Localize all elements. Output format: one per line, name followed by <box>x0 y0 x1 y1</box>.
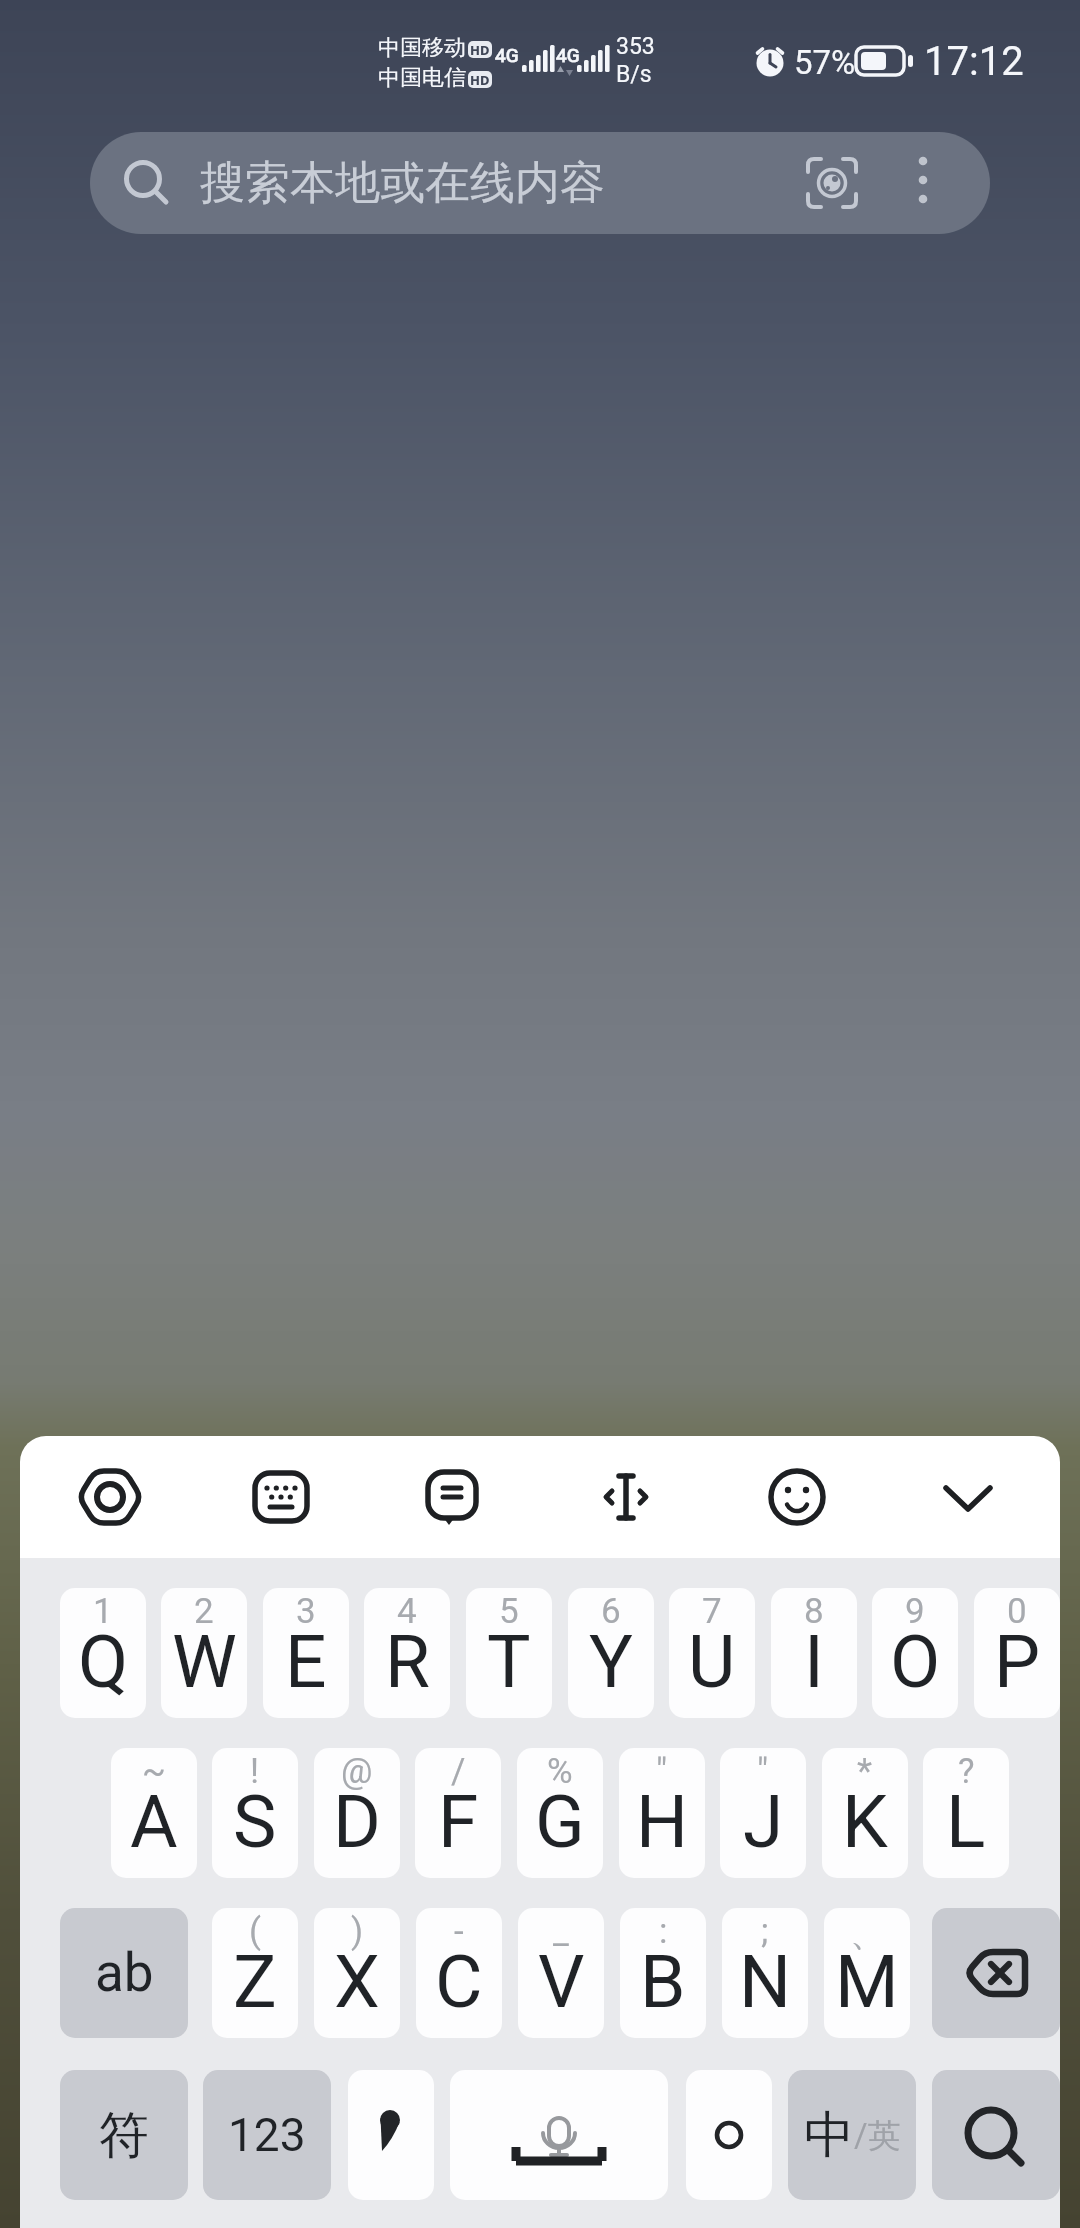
button[interactable] <box>348 2070 434 2200</box>
button[interactable]: ; <box>722 1908 808 2038</box>
staticText: W <box>172 1619 237 1705</box>
button[interactable]: ! <box>212 1748 298 1878</box>
staticText: /英 <box>854 2115 901 2157</box>
button[interactable] <box>932 1462 1004 1534</box>
staticText: 中国电信 <box>378 64 466 92</box>
staticText: HD <box>470 41 490 58</box>
staticText: 2 <box>194 1591 214 1632</box>
button[interactable]: _ <box>518 1908 604 2038</box>
button[interactable]: % <box>517 1748 603 1878</box>
button[interactable] <box>932 2070 1060 2200</box>
staticText: 6 <box>601 1591 621 1632</box>
staticText: 8 <box>804 1591 824 1632</box>
staticText: / <box>451 1751 466 1792</box>
button[interactable]: " <box>619 1748 705 1878</box>
staticText: ) <box>351 1911 364 1952</box>
staticText: 9 <box>905 1591 925 1632</box>
button[interactable]: 9 <box>872 1588 958 1718</box>
staticText: O <box>890 1619 941 1705</box>
button[interactable] <box>416 1461 488 1533</box>
button[interactable]: 4 <box>364 1588 450 1718</box>
button[interactable] <box>761 1461 833 1533</box>
button[interactable]: " <box>720 1748 806 1878</box>
staticText: T <box>487 1619 531 1705</box>
staticText: V <box>538 1939 585 2025</box>
button[interactable]: 1 <box>60 1588 146 1718</box>
staticText: F <box>438 1779 479 1865</box>
staticText: U <box>688 1619 736 1705</box>
button[interactable]: 搜索本地或在线内容 <box>90 132 990 234</box>
staticText: N <box>739 1939 792 2025</box>
staticText: G <box>535 1779 585 1865</box>
staticText: 3 <box>296 1591 316 1632</box>
staticText: 4G <box>556 44 580 66</box>
button[interactable] <box>74 1461 146 1533</box>
staticText: HD <box>470 71 490 88</box>
staticText: H <box>636 1779 689 1865</box>
button[interactable]: @ <box>314 1748 400 1878</box>
button[interactable]: 123 <box>203 2070 331 2200</box>
staticText: ; <box>761 1911 769 1952</box>
button[interactable]: : <box>620 1908 706 2038</box>
staticText: 4 <box>397 1591 417 1632</box>
staticText: R <box>385 1619 430 1705</box>
button[interactable]: 符 <box>60 2070 188 2200</box>
staticText: 符 <box>99 2104 149 2167</box>
button[interactable] <box>918 156 928 210</box>
staticText: 搜索本地或在线内容 <box>200 155 605 212</box>
button[interactable]: * <box>822 1748 908 1878</box>
staticText: M <box>835 1939 899 2025</box>
staticText: 中 <box>804 2104 854 2167</box>
staticText: 0 <box>1007 1591 1027 1632</box>
staticText: K <box>842 1779 888 1865</box>
button[interactable]: - <box>416 1908 502 2038</box>
staticText: Y <box>589 1619 633 1705</box>
staticText: S <box>233 1779 277 1865</box>
staticText: 123 <box>228 2108 306 2162</box>
staticText: B <box>640 1939 686 2025</box>
button[interactable] <box>806 157 858 209</box>
staticText: " <box>656 1751 668 1792</box>
button[interactable] <box>686 2070 772 2200</box>
button[interactable]: 8 <box>771 1588 857 1718</box>
button[interactable]: 、 <box>824 1908 910 2038</box>
button[interactable]: 中 <box>788 2070 916 2200</box>
button[interactable]: ab <box>60 1908 188 2038</box>
staticText: ! <box>250 1751 260 1792</box>
button[interactable] <box>932 1908 1060 2038</box>
staticText: @ <box>341 1751 373 1792</box>
button[interactable]: / <box>415 1748 501 1878</box>
button[interactable]: ? <box>923 1748 1009 1878</box>
staticText: P <box>994 1619 1041 1705</box>
staticText: - <box>454 1911 464 1952</box>
staticText: B/s <box>616 61 652 88</box>
button[interactable]: 2 <box>161 1588 247 1718</box>
staticText: : <box>659 1911 668 1952</box>
button[interactable]: 7 <box>669 1588 755 1718</box>
staticText: J <box>743 1779 784 1865</box>
staticText: Q <box>78 1619 129 1705</box>
staticText: 57% <box>794 43 856 82</box>
staticText: 4G <box>495 44 519 66</box>
button[interactable]: 3 <box>263 1588 349 1718</box>
staticText: I <box>804 1619 824 1705</box>
button[interactable]: 0 <box>974 1588 1060 1718</box>
button[interactable] <box>590 1461 662 1533</box>
staticText: 1 <box>93 1591 113 1632</box>
staticText: A <box>130 1779 178 1865</box>
staticText: 353 <box>616 33 655 60</box>
button[interactable]: ) <box>314 1908 400 2038</box>
staticText: 、 <box>850 1911 885 1955</box>
staticText: E <box>285 1619 327 1705</box>
staticText: _ <box>553 1911 569 1952</box>
staticText: D <box>333 1779 381 1865</box>
button[interactable] <box>245 1461 317 1533</box>
button[interactable]: 6 <box>568 1588 654 1718</box>
staticText: X <box>334 1939 380 2025</box>
button[interactable]: 5 <box>466 1588 552 1718</box>
staticText: 17:12 <box>924 38 1024 85</box>
button[interactable]: ~ <box>111 1748 197 1878</box>
button[interactable]: ( <box>212 1908 298 2038</box>
button[interactable] <box>450 2070 668 2200</box>
staticText: " <box>757 1751 769 1792</box>
